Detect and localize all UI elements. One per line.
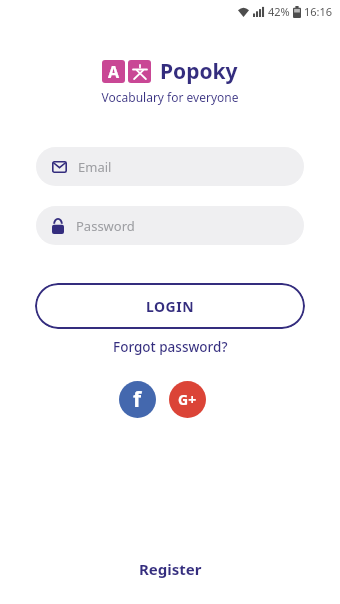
staticText: 42%	[268, 4, 290, 19]
staticText: Popoky	[160, 57, 238, 86]
staticText: A	[108, 61, 120, 83]
staticText: 16:16	[304, 4, 333, 19]
staticText: f	[133, 385, 142, 414]
staticText: G+	[178, 390, 197, 409]
staticText: Register	[139, 559, 202, 579]
button[interactable]: G+	[169, 381, 206, 418]
button[interactable]: LOGIN	[35, 283, 305, 329]
staticText: Email	[78, 158, 112, 176]
staticText: Password	[76, 217, 135, 235]
button[interactable]: Password	[36, 206, 304, 245]
staticText: Forgot password?	[113, 338, 228, 356]
button[interactable]: Register	[139, 559, 202, 579]
staticText: Vocabulary for everyone	[0, 89, 340, 105]
button[interactable]: Forgot password?	[113, 338, 228, 356]
staticText: LOGIN	[146, 297, 195, 316]
button[interactable]: f	[119, 381, 156, 418]
button[interactable]: Email	[36, 147, 304, 186]
